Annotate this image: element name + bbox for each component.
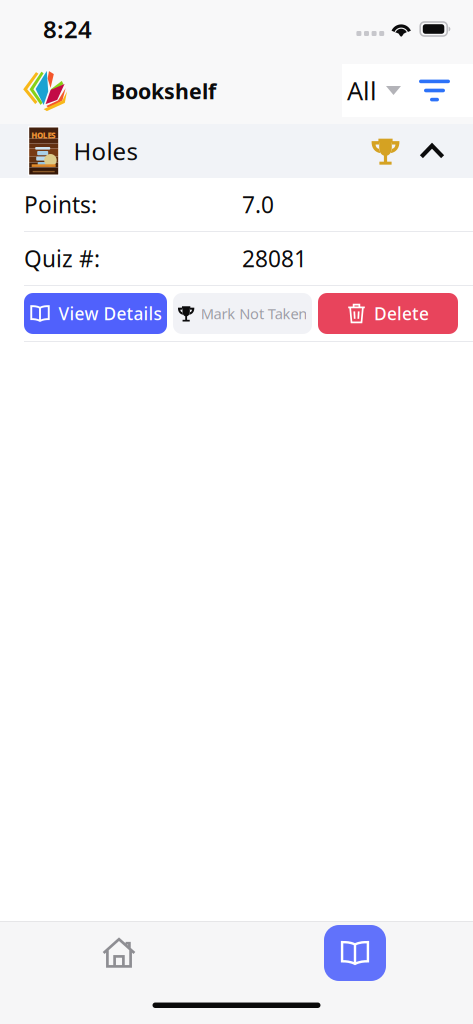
button[interactable]: Delete <box>318 293 458 334</box>
button[interactable]: HOLES <box>0 124 473 178</box>
staticText: Delete <box>374 302 429 325</box>
staticText: Holes <box>73 135 137 167</box>
staticText: Points: <box>24 189 97 219</box>
button[interactable]: Mark Not Taken <box>173 293 312 334</box>
staticText: 8:24 <box>43 13 92 45</box>
button[interactable]: View Details <box>24 293 167 334</box>
staticText: View Details <box>58 302 161 325</box>
staticText: All <box>347 74 377 107</box>
button[interactable]: Bookshelf <box>324 925 386 981</box>
staticText: Bookshelf <box>111 77 216 105</box>
button[interactable]: All <box>342 64 473 117</box>
staticText: 7.0 <box>242 189 274 219</box>
staticText: 28081 <box>242 243 307 273</box>
staticText: Mark Not Taken <box>201 304 307 323</box>
button[interactable]: Home <box>86 925 152 981</box>
staticText: HOLES <box>31 130 56 141</box>
staticText: Quiz #: <box>24 243 100 273</box>
